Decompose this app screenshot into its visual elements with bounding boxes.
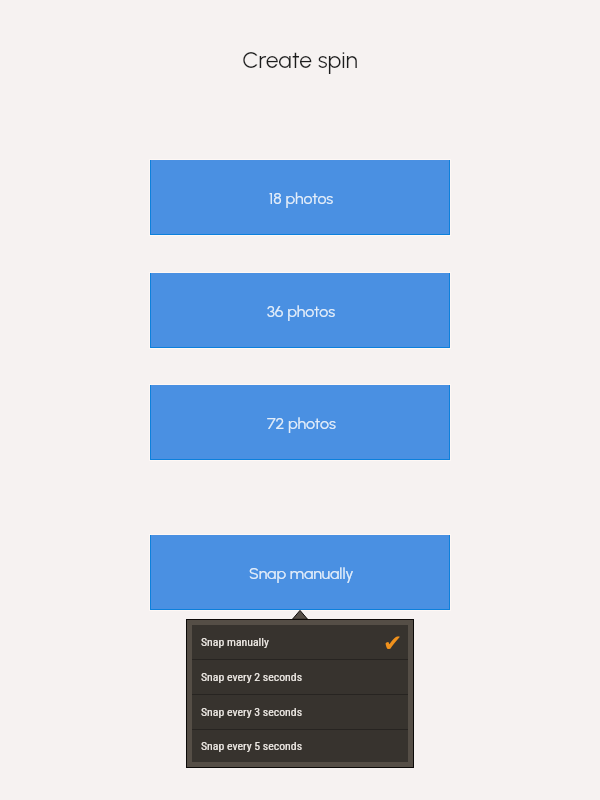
button[interactable]: 18 photos — [149, 159, 451, 236]
staticText: Snap manually — [201, 635, 269, 649]
staticText: Snap every 5 seconds — [201, 739, 303, 753]
staticText: ✔ — [383, 630, 403, 657]
button[interactable]: Snap every 5 seconds — [192, 730, 408, 762]
staticText: 72 photos — [267, 414, 336, 433]
staticText: Snap manually — [249, 564, 354, 583]
button[interactable]: 72 photos — [149, 384, 451, 461]
staticText: Create spin — [0, 46, 600, 74]
button[interactable]: Snap every 3 seconds — [192, 695, 408, 729]
staticText: 36 photos — [267, 302, 336, 321]
button[interactable]: 36 photos — [149, 272, 451, 349]
staticText: Snap every 3 seconds — [201, 705, 303, 719]
button[interactable]: Snap manually — [192, 625, 408, 659]
button[interactable]: Snap every 2 seconds — [192, 660, 408, 694]
staticText: 18 photos — [269, 189, 334, 208]
staticText: Snap every 2 seconds — [201, 670, 303, 684]
button[interactable]: Snap manually — [149, 534, 451, 611]
